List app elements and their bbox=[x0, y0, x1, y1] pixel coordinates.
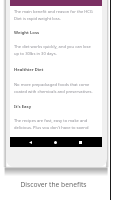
staticText: Healthier Diet bbox=[14, 67, 44, 73]
staticText: No more prepackaged foods that come coat… bbox=[14, 82, 93, 94]
staticText: The recipes are fast, easy to make and d… bbox=[14, 118, 93, 129]
staticText: Discover the benefits bbox=[20, 180, 87, 189]
staticText: It's Easy bbox=[14, 104, 32, 110]
staticText: The diet works quickly, and you can lose… bbox=[14, 44, 93, 56]
button[interactable]: Back bbox=[25, 137, 35, 147]
staticText: The main benefit and reason for the HCG … bbox=[14, 9, 93, 21]
button[interactable]: Recent apps bbox=[75, 137, 85, 147]
staticText: Weight Loss bbox=[14, 30, 40, 36]
button[interactable]: Home bbox=[50, 137, 60, 147]
